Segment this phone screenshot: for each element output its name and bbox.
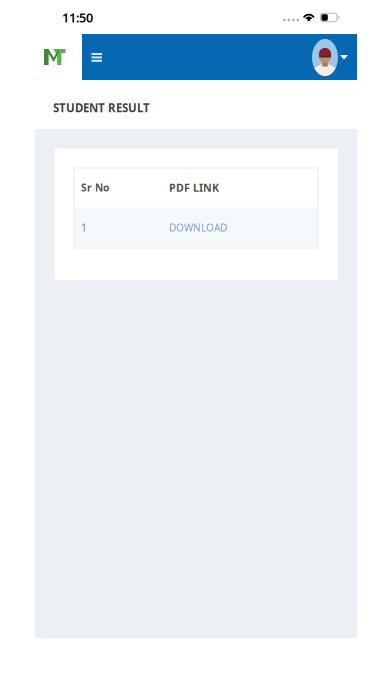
button[interactable]: 1 bbox=[74, 207, 318, 248]
staticText: DOWNLOAD bbox=[169, 221, 227, 234]
staticText: 1 bbox=[81, 220, 87, 235]
staticText: 11:50 bbox=[62, 9, 93, 26]
button[interactable]: Open menu bbox=[82, 34, 111, 80]
staticText: PDF LINK bbox=[169, 180, 219, 195]
button[interactable]: Account menu bbox=[305, 34, 357, 80]
staticText: Sr No bbox=[81, 181, 109, 194]
staticText: STUDENT RESULT bbox=[53, 100, 150, 116]
